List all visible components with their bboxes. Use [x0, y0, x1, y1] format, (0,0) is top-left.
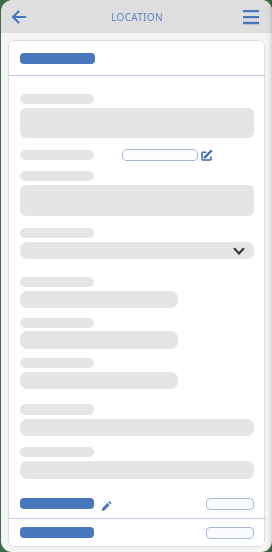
button[interactable]: Menu [234, 0, 267, 33]
button[interactable]: Edit [201, 150, 212, 161]
button[interactable]: Back [2, 0, 35, 33]
button[interactable]: Action [206, 527, 254, 539]
button[interactable] [122, 149, 198, 161]
staticText: LOCATION [111, 10, 163, 24]
button[interactable] [20, 53, 95, 64]
button[interactable]: Edit [101, 500, 112, 511]
button[interactable]: Open dropdown [20, 242, 254, 259]
button[interactable]: Action [206, 498, 254, 510]
button[interactable]: Action [20, 519, 254, 546]
button[interactable]: Edit [20, 489, 254, 518]
